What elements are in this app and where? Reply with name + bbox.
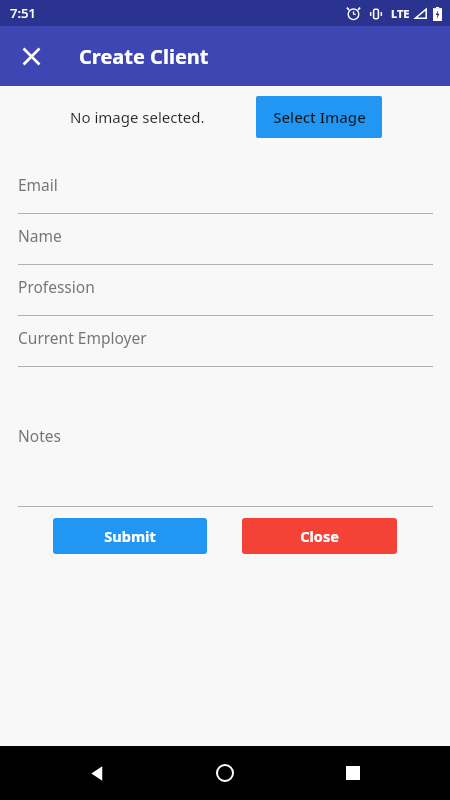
staticText: Submit [104,526,156,546]
staticText: Email [18,174,58,195]
staticText: Select Image [273,107,366,127]
button[interactable]: Back [73,749,121,797]
button[interactable]: Notes [0,367,450,507]
button[interactable]: Name [0,214,450,265]
button[interactable]: Email [0,166,450,214]
button[interactable]: Close [11,36,51,76]
staticText: No image selected. [70,107,205,127]
staticText: Name [18,225,62,246]
button[interactable]: Submit [53,518,207,554]
staticText: Current Employer [18,327,147,348]
button[interactable]: Home [201,749,249,797]
staticText: Profession [18,276,95,297]
staticText: 7:51 [10,4,36,22]
button[interactable]: Current Employer [0,316,450,367]
button[interactable]: Close [242,518,397,554]
button[interactable]: Profession [0,265,450,316]
staticText: LTE [391,6,410,21]
staticText: Create Client [79,43,209,70]
button[interactable]: Recent apps [329,749,377,797]
staticText: Close [300,526,339,546]
staticText: Notes [18,425,61,446]
button[interactable]: Select Image [256,96,382,138]
